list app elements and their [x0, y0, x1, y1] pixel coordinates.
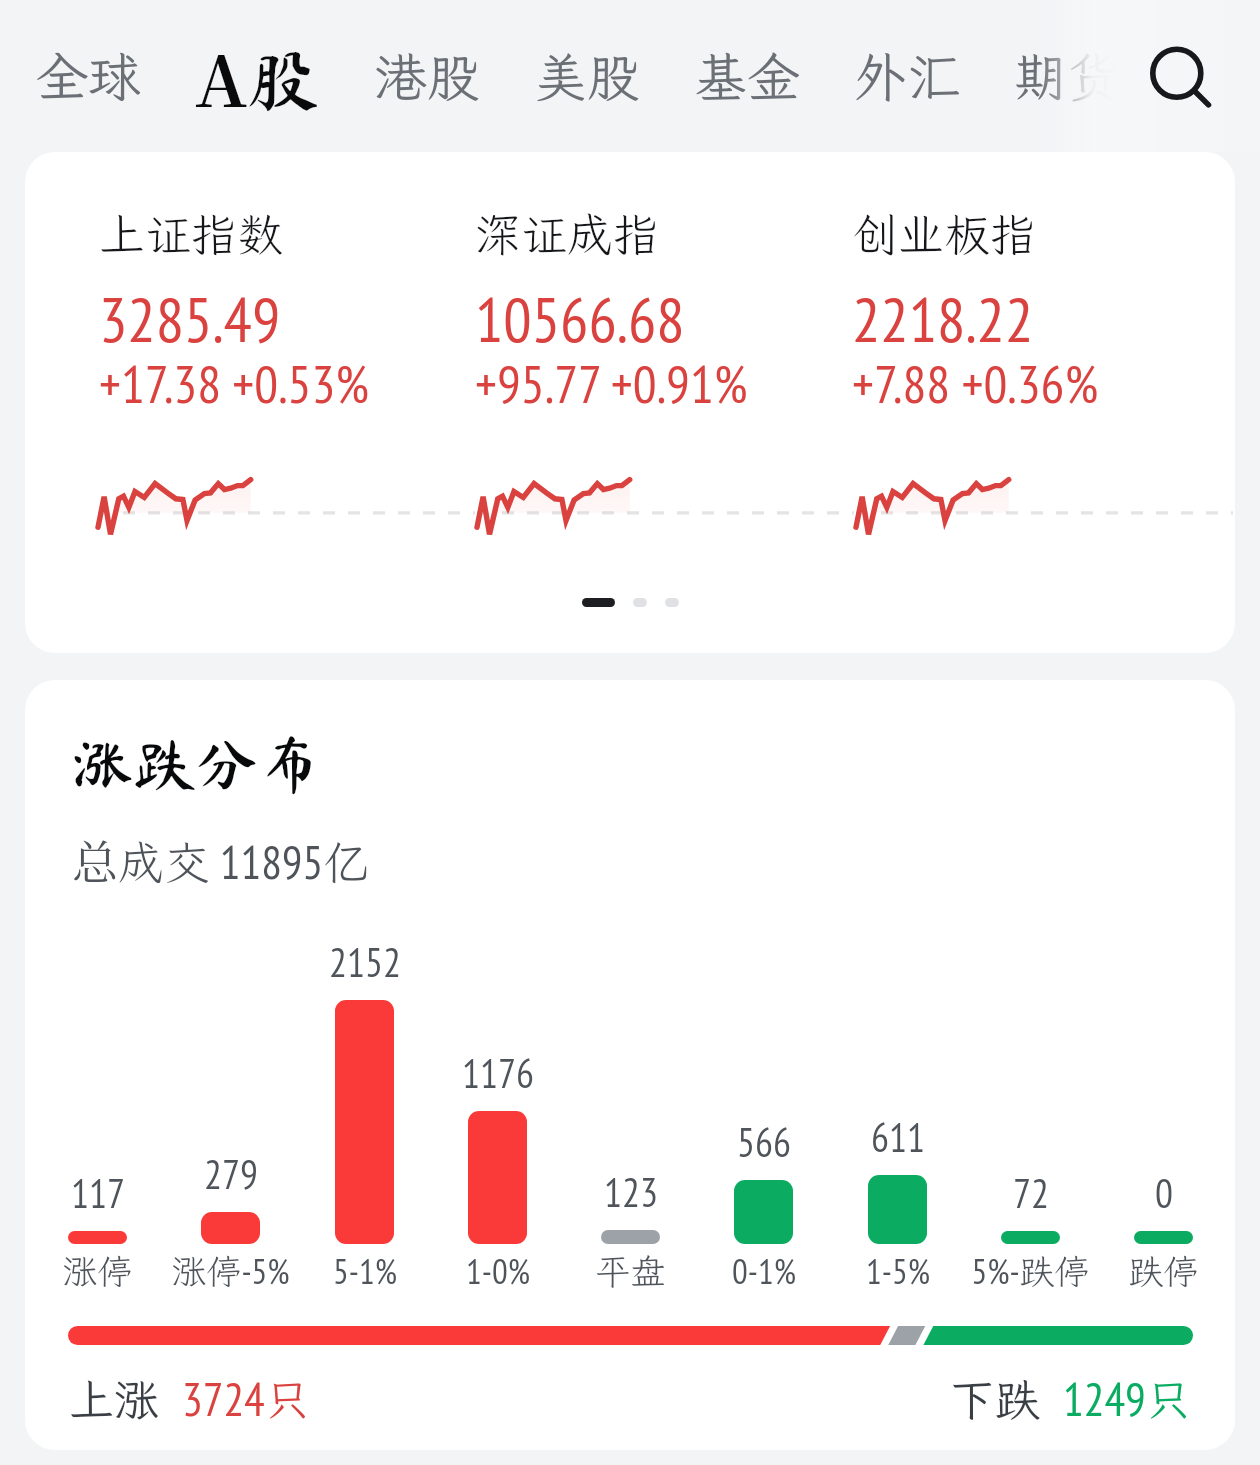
- staticText: A股: [195, 26, 320, 127]
- staticText: 涨停-5%: [171, 1248, 290, 1294]
- staticText: 下跌: [950, 1370, 1041, 1429]
- staticText: +7.88 +0.36%: [852, 349, 1099, 418]
- staticText: 深证成指: [475, 204, 659, 265]
- staticText: 跌停: [1128, 1248, 1199, 1294]
- staticText: 1176: [462, 1047, 534, 1099]
- staticText: 5%-跌停: [971, 1248, 1090, 1294]
- staticText: 123: [604, 1166, 658, 1218]
- staticText: 10566.68: [475, 278, 685, 360]
- staticText: 566: [737, 1116, 791, 1168]
- staticText: 平盘: [595, 1248, 666, 1294]
- staticText: 72: [1013, 1167, 1049, 1219]
- staticText: 1-0%: [466, 1248, 530, 1293]
- staticText: 0-1%: [732, 1248, 796, 1293]
- staticText: 3285.49: [99, 278, 281, 360]
- staticText: 1249只: [1063, 1369, 1192, 1430]
- staticText: +95.77 +0.91%: [475, 349, 748, 418]
- staticText: 1-5%: [866, 1248, 930, 1293]
- staticText: 2152: [329, 936, 401, 988]
- button[interactable]: 港股: [347, 33, 507, 119]
- staticText: 2218.22: [852, 278, 1034, 360]
- staticText: 全球: [35, 41, 141, 111]
- button[interactable]: 期货: [987, 33, 1147, 119]
- button[interactable]: 全球: [8, 33, 168, 119]
- staticText: 美股: [534, 41, 640, 111]
- button[interactable]: 基金: [667, 33, 827, 119]
- staticText: 611: [871, 1111, 925, 1163]
- staticText: 上涨: [69, 1370, 160, 1429]
- staticText: 创业板指: [852, 204, 1036, 265]
- staticText: 279: [204, 1148, 258, 1200]
- staticText: 0: [1155, 1167, 1173, 1219]
- staticText: 3724只: [182, 1369, 311, 1430]
- staticText: 总成交 11895亿: [72, 826, 370, 892]
- button[interactable]: 上证指数: [25, 152, 1235, 653]
- staticText: 基金: [694, 41, 800, 111]
- button[interactable]: 外汇: [827, 33, 987, 119]
- staticText: +17.38 +0.53%: [99, 349, 370, 418]
- staticText: 港股: [374, 41, 480, 111]
- staticText: 外汇: [854, 41, 960, 111]
- button[interactable]: Search: [1131, 26, 1231, 126]
- button[interactable]: A股: [168, 18, 347, 135]
- staticText: 涨跌分布: [72, 732, 321, 794]
- staticText: 涨停: [62, 1248, 133, 1294]
- staticText: 5-1%: [333, 1248, 397, 1293]
- button[interactable]: 美股: [507, 33, 667, 119]
- staticText: 期货: [1014, 41, 1120, 111]
- staticText: 117: [71, 1167, 125, 1219]
- staticText: 上证指数: [99, 204, 283, 265]
